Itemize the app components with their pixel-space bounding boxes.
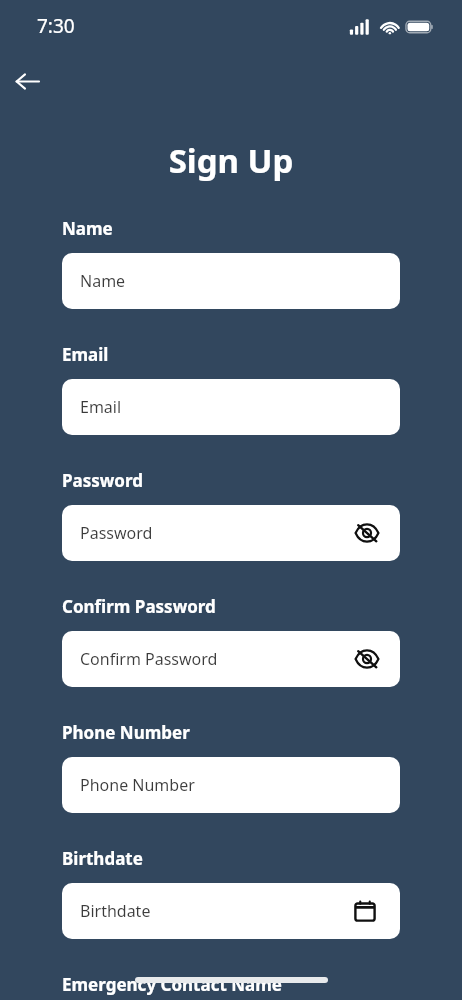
button[interactable]: Phone Number [62,757,400,813]
staticText: Name [62,217,113,240]
staticText: Phone Number [80,774,195,796]
staticText: Birthdate [80,900,151,922]
staticText: Name [80,270,126,292]
staticText: Birthdate [62,847,143,870]
button[interactable]: Birthdate [62,883,400,939]
button[interactable]: Confirm Password [62,631,400,687]
button[interactable]: Email [62,379,400,435]
staticText: Email [62,343,109,366]
button[interactable]: Toggle password visibility [352,644,382,674]
staticText: Confirm Password [62,595,216,618]
staticText: Sign Up [0,138,462,183]
staticText: Confirm Password [80,648,218,670]
staticText: 7:30 [37,13,75,39]
button[interactable]: Name [62,253,400,309]
button[interactable]: Pick date [350,896,380,926]
button[interactable]: Toggle password visibility [352,518,382,548]
staticText: Emergency Contact Name [62,973,282,996]
staticText: Phone Number [62,721,190,744]
button[interactable]: Back [5,59,49,103]
button[interactable]: Password [62,505,400,561]
staticText: Password [62,469,143,492]
staticText: Password [80,522,153,544]
staticText: Email [80,396,122,418]
